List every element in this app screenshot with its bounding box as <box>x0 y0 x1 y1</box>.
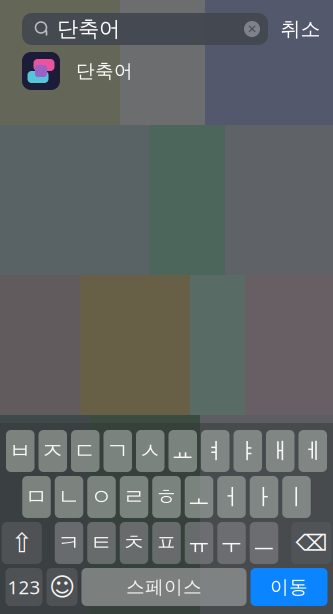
button[interactable]: ㅋ <box>55 522 83 564</box>
button[interactable]: 이모티콘 <box>46 568 77 606</box>
staticText: ⇧ <box>11 528 33 558</box>
staticText: ㅗ <box>187 483 210 511</box>
staticText: ㄴ <box>57 483 80 511</box>
button[interactable]: ㄷ <box>71 430 99 472</box>
staticText: ㄱ <box>106 437 129 465</box>
staticText: ㅊ <box>122 529 145 557</box>
button[interactable]: ㅡ <box>250 522 278 564</box>
staticText: ✕ <box>247 22 257 36</box>
staticText: 이동 <box>270 575 308 598</box>
button[interactable]: ㅐ <box>266 430 294 472</box>
staticText: ㅍ <box>155 529 178 557</box>
button[interactable]: ㅗ <box>185 476 213 518</box>
staticText: ㅜ <box>220 529 243 557</box>
staticText: ㅡ <box>252 529 275 557</box>
staticText: 단축어 <box>57 16 120 42</box>
staticText: ㅓ <box>220 483 243 511</box>
staticText: ㅁ <box>25 483 48 511</box>
button[interactable]: ㅠ <box>185 522 213 564</box>
staticText: ㅛ <box>171 437 194 465</box>
button[interactable]: ㅈ <box>38 430 67 472</box>
button[interactable]: ㄱ <box>103 430 132 472</box>
button[interactable]: ㅕ <box>201 430 229 472</box>
button[interactable]: ㅍ <box>152 522 181 564</box>
button[interactable]: ㅌ <box>87 522 116 564</box>
staticText: ☺ <box>49 573 75 601</box>
button[interactable]: ㅁ <box>22 476 51 518</box>
staticText: ㅂ <box>9 437 32 465</box>
button[interactable]: 삭제 <box>291 522 331 564</box>
button[interactable]: ㅅ <box>136 430 164 472</box>
button[interactable]: ㅏ <box>250 476 278 518</box>
staticText: ㅈ <box>41 437 64 465</box>
button[interactable]: 123 <box>5 568 42 606</box>
staticText: ㅣ <box>285 483 308 511</box>
button[interactable]: Shift <box>2 522 42 564</box>
button[interactable]: 취소 <box>268 13 333 45</box>
staticText: ㅇ <box>90 483 113 511</box>
staticText: ㅎ <box>155 483 178 511</box>
staticText: 123 <box>7 575 40 599</box>
button[interactable]: ㅛ <box>168 430 197 472</box>
staticText: ㅕ <box>204 437 227 465</box>
button[interactable]: ㅔ <box>298 430 327 472</box>
staticText: ㅐ <box>269 437 292 465</box>
button[interactable]: ㅓ <box>217 476 246 518</box>
button[interactable]: 지우기 <box>236 13 268 45</box>
button[interactable]: 이동 <box>250 568 327 606</box>
button[interactable]: 단축어 <box>0 45 333 97</box>
button[interactable]: ㅑ <box>233 430 262 472</box>
staticText: 스페이스 <box>126 575 202 598</box>
button[interactable]: ㅜ <box>217 522 246 564</box>
button[interactable]: 스페이스 <box>81 568 246 606</box>
staticText: ⌫ <box>295 530 327 556</box>
staticText: ㅠ <box>187 529 210 557</box>
button[interactable]: ㅎ <box>152 476 181 518</box>
button[interactable]: ㄴ <box>55 476 83 518</box>
staticText: ㅌ <box>90 529 113 557</box>
staticText: 취소 <box>280 17 320 41</box>
staticText: ㅏ <box>252 483 275 511</box>
staticText: ㅔ <box>301 437 324 465</box>
button[interactable]: ㄹ <box>120 476 148 518</box>
staticText: 단축어 <box>76 59 133 82</box>
staticText: ㅑ <box>236 437 259 465</box>
staticText: ㄷ <box>74 437 97 465</box>
button[interactable]: ㅇ <box>87 476 116 518</box>
staticText: ㅅ <box>139 437 162 465</box>
staticText: ㄹ <box>122 483 145 511</box>
button[interactable]: ㅣ <box>282 476 311 518</box>
button[interactable]: ㅂ <box>6 430 34 472</box>
button[interactable]: ㅊ <box>120 522 148 564</box>
staticText: ㅋ <box>57 529 80 557</box>
